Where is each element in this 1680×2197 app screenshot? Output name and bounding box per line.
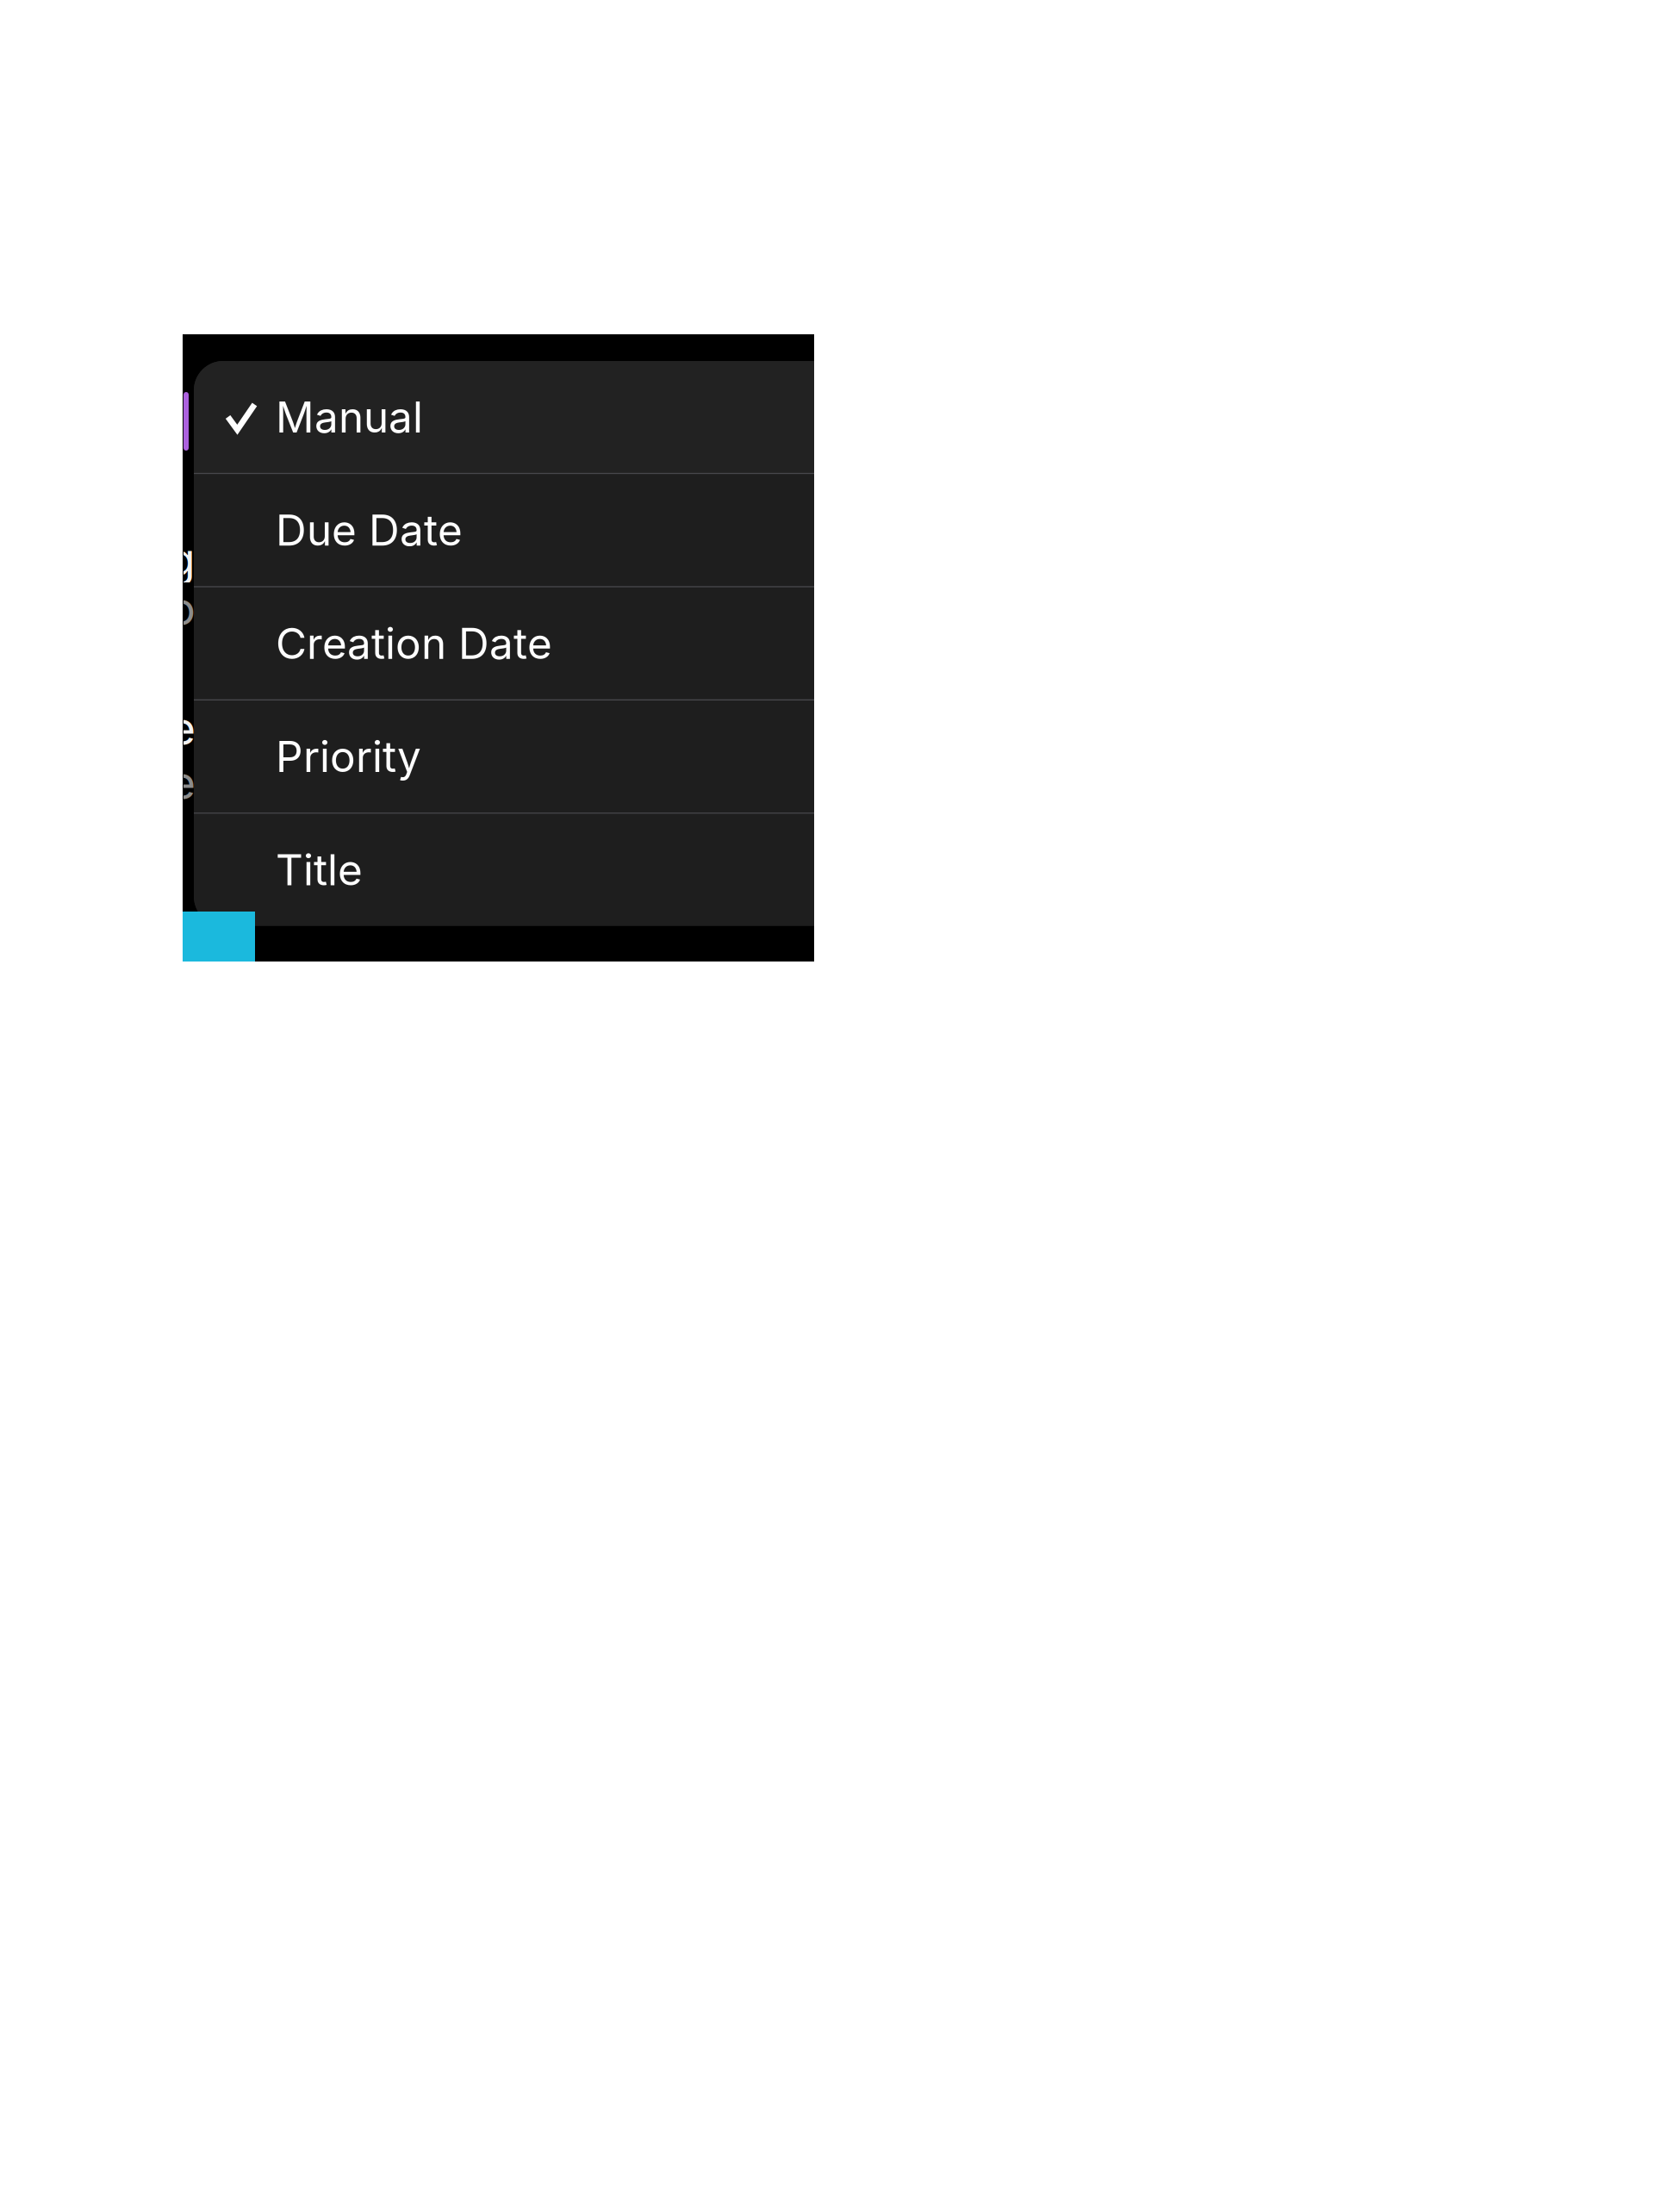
button[interactable]: Priority: [194, 701, 857, 813]
staticText: Manual: [276, 391, 423, 443]
staticText: o: [168, 580, 196, 636]
button[interactable]: Title: [194, 814, 857, 926]
staticText: e: [169, 700, 196, 756]
button[interactable]: Creation Date: [194, 587, 857, 699]
staticText: Due Date: [276, 504, 463, 556]
staticText: e: [169, 754, 196, 810]
staticText: Creation Date: [276, 618, 552, 669]
staticText: Title: [276, 844, 363, 896]
staticText: Priority: [276, 731, 421, 782]
button[interactable]: Manual: [194, 361, 857, 473]
button[interactable]: Due Date: [194, 474, 857, 586]
staticText: g: [167, 531, 196, 587]
